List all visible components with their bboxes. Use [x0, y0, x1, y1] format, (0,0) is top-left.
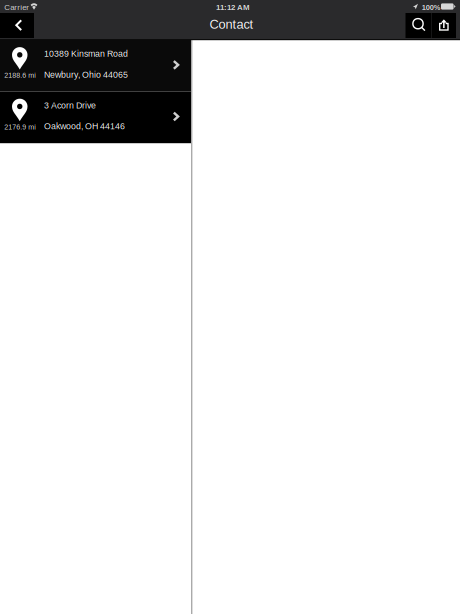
staticText: Carrier [4, 3, 29, 12]
button[interactable]: 2188.6 mi [0, 40, 191, 92]
staticText: 10389 Kinsman Road [44, 49, 128, 59]
staticText: Contact [209, 17, 253, 31]
staticText: 3 Acorn Drive [44, 100, 96, 110]
staticText: 2176.9 mi [4, 123, 36, 131]
staticText: 100% [422, 3, 441, 11]
button[interactable]: Share [432, 13, 456, 38]
button[interactable]: 2176.9 mi [0, 92, 191, 143]
staticText: Oakwood, OH 44146 [44, 121, 125, 131]
button[interactable]: Back [0, 13, 34, 38]
button[interactable]: Search [405, 13, 431, 38]
staticText: Newbury, Ohio 44065 [44, 70, 128, 79]
staticText: 2188.6 mi [4, 71, 36, 79]
staticText: 11:12 AM [216, 3, 250, 12]
